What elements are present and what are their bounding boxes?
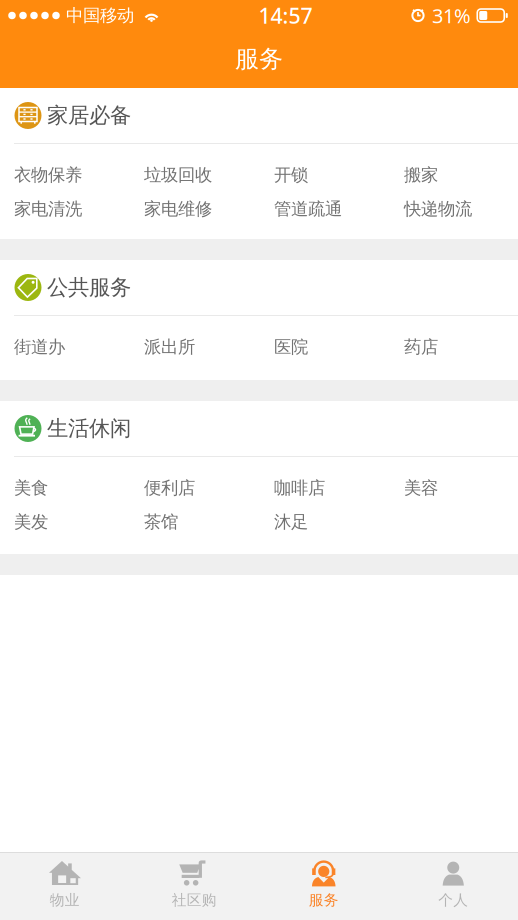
button[interactable]: 开锁	[274, 158, 404, 192]
button[interactable]: 社区购	[129, 853, 259, 920]
staticText: 管道疏通	[274, 198, 342, 220]
button[interactable]: 物业	[0, 853, 129, 920]
staticText: 垃圾回收	[144, 164, 212, 186]
staticText: 美发	[14, 511, 48, 533]
staticText: 衣物保养	[14, 164, 82, 186]
button[interactable]: 美食	[14, 471, 144, 505]
button[interactable]: 衣物保养	[14, 158, 144, 192]
button[interactable]: 咖啡店	[274, 471, 404, 505]
staticText: 快递物流	[404, 198, 472, 220]
staticText: 31%	[432, 2, 471, 29]
staticText: 咖啡店	[274, 477, 325, 499]
staticText: 茶馆	[144, 511, 178, 533]
staticText: 美食	[14, 477, 48, 499]
staticText: 沐足	[274, 511, 308, 533]
staticText: 家居必备	[47, 102, 131, 129]
button[interactable]: 快递物流	[404, 192, 518, 226]
staticText: 医院	[274, 336, 308, 358]
staticText: 开锁	[274, 164, 308, 186]
staticText: 公共服务	[47, 274, 131, 301]
staticText: 中国移动	[66, 5, 134, 26]
staticText: 服务	[309, 891, 339, 909]
staticText: 14:57	[258, 1, 312, 30]
button[interactable]: 街道办	[14, 330, 144, 364]
staticText: 服务	[235, 44, 283, 74]
button[interactable]: 服务	[259, 853, 388, 920]
staticText: 个人	[438, 891, 468, 909]
button[interactable]: 家电维修	[144, 192, 274, 226]
button[interactable]: 便利店	[144, 471, 274, 505]
button[interactable]: 药店	[404, 330, 518, 364]
staticText: 生活休闲	[47, 415, 131, 442]
button[interactable]: 管道疏通	[274, 192, 404, 226]
staticText: 物业	[50, 891, 80, 909]
button[interactable]: 个人	[388, 853, 518, 920]
staticText: 美容	[404, 477, 438, 499]
button[interactable]: 医院	[274, 330, 404, 364]
button[interactable]: 派出所	[144, 330, 274, 364]
button[interactable]: 搬家	[404, 158, 518, 192]
staticText: 药店	[404, 336, 438, 358]
button[interactable]: 茶馆	[144, 505, 274, 539]
staticText: 街道办	[14, 336, 65, 358]
button[interactable]: 美容	[404, 471, 518, 505]
button[interactable]: 沐足	[274, 505, 404, 539]
button[interactable]: 垃圾回收	[144, 158, 274, 192]
staticText: 便利店	[144, 477, 195, 499]
staticText: 家电清洗	[14, 198, 82, 220]
button[interactable]: 美发	[14, 505, 144, 539]
staticText: 派出所	[144, 336, 195, 358]
staticText: 家电维修	[144, 198, 212, 220]
staticText: 社区购	[172, 891, 217, 909]
staticText: 搬家	[404, 164, 438, 186]
button[interactable]: 家电清洗	[14, 192, 144, 226]
